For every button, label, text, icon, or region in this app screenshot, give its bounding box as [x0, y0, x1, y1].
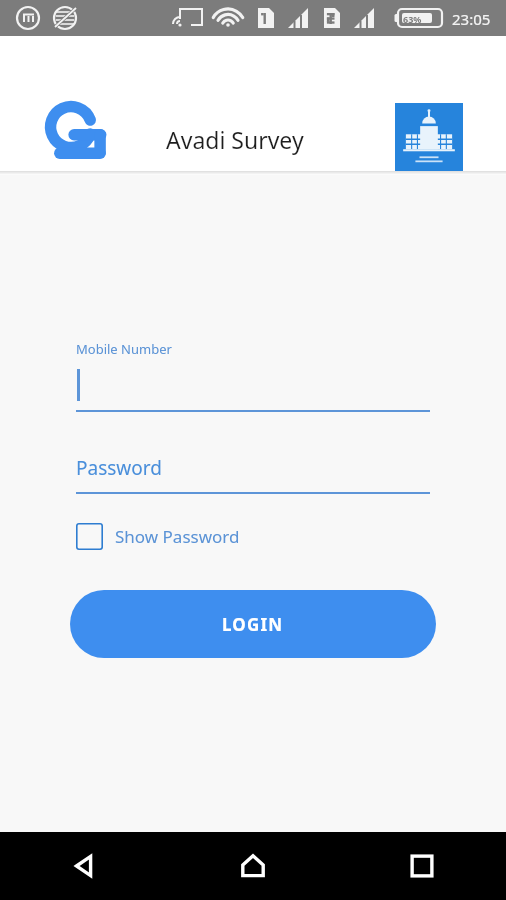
button[interactable]: Recent apps — [337, 832, 506, 900]
button[interactable]: Avadi Corporation — [395, 103, 463, 171]
button[interactable]: Back — [0, 832, 168, 900]
button[interactable]: Mobile Number — [76, 340, 430, 412]
staticText: 63% — [403, 13, 422, 25]
button[interactable]: App logo — [45, 101, 107, 163]
staticText: Avadi Survey — [166, 124, 304, 155]
staticText: 23:05 — [452, 9, 491, 29]
button[interactable]: Show Password — [76, 518, 240, 554]
staticText: Show Password — [115, 525, 240, 548]
staticText: LOGIN — [222, 613, 284, 636]
staticText: Password — [76, 455, 162, 481]
staticText: Mobile Number — [76, 340, 172, 358]
button[interactable]: Home — [168, 832, 337, 900]
button[interactable]: LOGIN — [70, 590, 436, 658]
button[interactable]: Password — [76, 455, 430, 494]
